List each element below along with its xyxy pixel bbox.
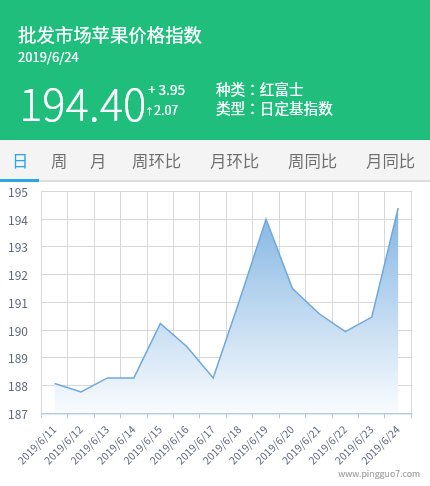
staticText: + 3.95 xyxy=(148,79,186,99)
staticText: 2019/6/24 xyxy=(18,47,79,66)
button[interactable]: 周环比 xyxy=(118,140,196,180)
button[interactable]: 周同比 xyxy=(274,140,352,180)
staticText: 194.40 xyxy=(19,71,147,134)
staticText: 月 xyxy=(90,148,107,172)
button[interactable]: 月 xyxy=(79,140,118,180)
staticText: ↑2.07 xyxy=(145,100,179,118)
staticText: 类型：日定基指数 xyxy=(216,97,333,118)
staticText: 月环比 xyxy=(210,148,260,172)
button[interactable]: 周 xyxy=(40,140,79,180)
button[interactable]: 月同比 xyxy=(352,140,430,180)
staticText: 日 xyxy=(12,148,29,172)
button[interactable]: 日 xyxy=(0,140,40,180)
staticText: 月同比 xyxy=(366,148,416,172)
staticText: 种类：红富士 xyxy=(216,78,304,99)
staticText: 批发市场苹果价格指数 xyxy=(18,21,202,48)
staticText: 周同比 xyxy=(288,148,338,172)
staticText: 周 xyxy=(51,148,68,172)
staticText: 周环比 xyxy=(132,148,182,172)
button[interactable]: 月环比 xyxy=(196,140,274,180)
